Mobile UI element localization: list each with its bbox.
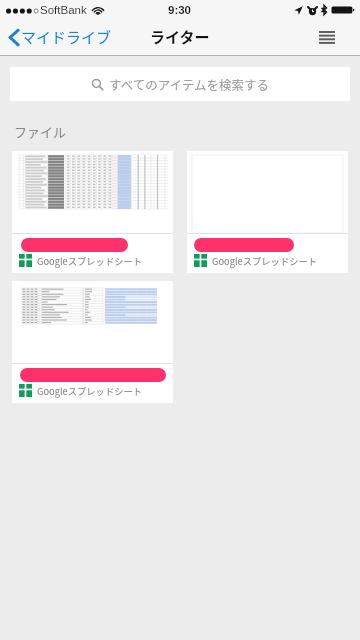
button[interactable]: Googleスプレッドシート [187,151,348,273]
staticText: Googleスプレッドシート [212,254,318,267]
staticText: すべてのアイテムを検索する [109,75,269,93]
staticText: ファイル [14,122,67,141]
staticText: Googleスプレッドシート [37,384,143,397]
button[interactable]: マイドライブ [0,21,122,53]
button[interactable]: すべてのアイテムを検索する [10,67,350,101]
button[interactable]: Googleスプレッドシート [12,281,173,403]
button[interactable]: List view [306,22,360,52]
staticText: マイドライブ [21,26,112,48]
staticText: 9:30 [168,4,192,17]
staticText: SoftBank [40,4,87,17]
staticText: Googleスプレッドシート [37,254,143,267]
staticText: ライター [150,26,210,48]
button[interactable]: Googleスプレッドシート [12,151,173,273]
